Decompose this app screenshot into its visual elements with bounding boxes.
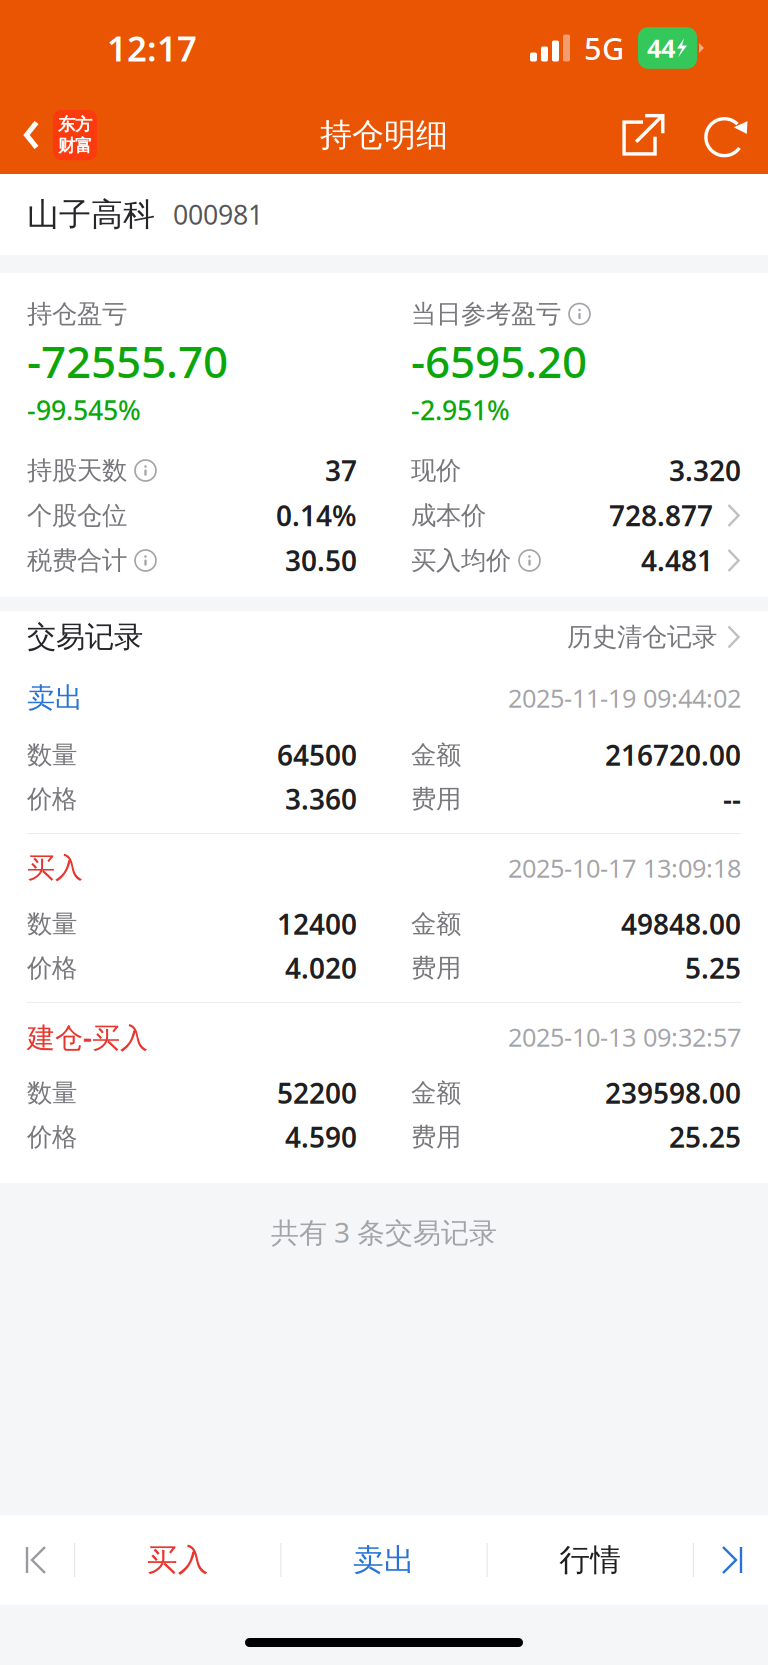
staticText: 49848.00 [621,905,741,943]
staticText: 4.590 [285,1118,357,1156]
staticText: 728.877 [609,497,713,534]
button[interactable]: Refresh [697,96,757,174]
staticText: -99.545% [27,392,141,428]
staticText: 现价 [411,455,461,486]
staticText: 金额 [411,1077,461,1108]
staticText: 当日参考盈亏 [411,298,561,329]
button[interactable]: 卖出 [281,1515,487,1605]
staticText: 4.481 [641,542,713,579]
staticText: 建仓-买入 [27,1018,148,1056]
staticText: 持仓盈亏 [27,298,127,329]
staticText: 5G [584,28,624,68]
staticText: 卖出 [353,1541,415,1579]
staticText: 12:17 [107,25,197,71]
staticText: 买入均价 [411,545,511,576]
staticText: -6595.20 [411,332,587,390]
staticText: 30.50 [285,542,357,579]
staticText: 买入 [147,1541,209,1579]
button[interactable]: First [0,1515,74,1605]
staticText: 44 [647,31,675,65]
staticText: 000981 [173,197,263,232]
staticText: 数量 [27,739,77,770]
staticText: 历史清仓记录 [567,621,717,652]
staticText: 共有 3 条交易记录 [271,1213,497,1251]
staticText: 金额 [411,739,461,770]
staticText: 东方 [58,114,92,135]
button[interactable]: 东方 [0,96,109,174]
staticText: 价格 [27,783,77,814]
staticText: 12400 [277,905,357,943]
staticText: 25.25 [669,1118,741,1156]
button[interactable]: 历史清仓记录 [567,611,741,663]
staticText: -72555.70 [27,332,228,390]
staticText: 数量 [27,908,77,939]
staticText: 239598.00 [605,1074,741,1112]
staticText: 5.25 [685,949,741,987]
staticText: 216720.00 [605,736,741,774]
staticText: 税费合计 [27,545,127,576]
staticText: 成本价 [411,500,486,531]
staticText: 52200 [277,1074,357,1112]
staticText: -- [723,780,741,818]
staticText: 3.320 [669,452,741,489]
staticText: 费用 [411,952,461,983]
staticText: 64500 [277,736,357,774]
button[interactable]: Last [694,1515,768,1605]
staticText: 2025-11-19 09:44:02 [508,681,741,715]
staticText: 卖出 [27,681,83,715]
button[interactable]: Share [613,96,673,174]
staticText: 行情 [559,1541,621,1579]
staticText: 财富 [58,135,92,156]
staticText: -2.951% [411,392,510,428]
staticText: 费用 [411,783,461,814]
staticText: 价格 [27,1121,77,1152]
staticText: 交易记录 [27,619,143,655]
staticText: 买入 [27,851,83,885]
staticText: 金额 [411,908,461,939]
staticText: 37 [325,452,357,489]
button[interactable]: 行情 [488,1515,693,1605]
staticText: 2025-10-17 13:09:18 [508,851,741,885]
staticText: 0.14% [276,497,357,534]
staticText: 价格 [27,952,77,983]
staticText: 3.360 [285,780,357,818]
staticText: 个股仓位 [27,500,127,531]
staticText: 数量 [27,1077,77,1108]
staticText: 2025-10-13 09:32:57 [508,1020,741,1054]
staticText: 山子高科 [27,195,155,234]
staticText: 费用 [411,1121,461,1152]
button[interactable]: 买入 [75,1515,280,1605]
staticText: 持股天数 [27,455,127,486]
staticText: 4.020 [285,949,357,987]
staticText: 持仓明细 [320,115,448,155]
